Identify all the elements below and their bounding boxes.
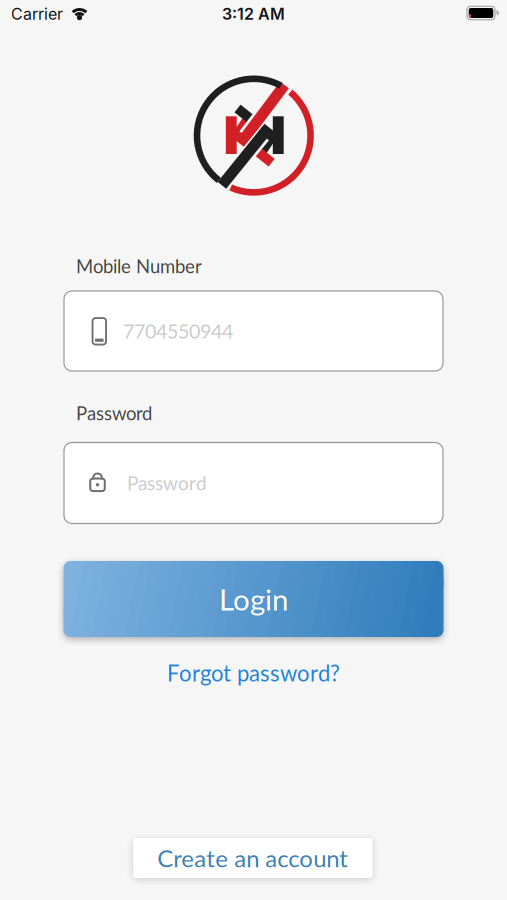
staticText: 3:12 AM <box>222 4 285 24</box>
button[interactable]: Login <box>63 561 443 637</box>
button[interactable] <box>64 291 443 371</box>
button[interactable] <box>64 442 443 523</box>
staticText: Password <box>127 472 207 494</box>
staticText: Mobile Number <box>76 255 202 277</box>
staticText: Login <box>219 581 288 617</box>
staticText: Carrier <box>11 4 63 24</box>
staticText: Forgot password? <box>167 660 340 686</box>
button[interactable]: Forgot password? <box>167 660 340 686</box>
staticText: Create an account <box>157 844 348 872</box>
button[interactable]: Create an account <box>133 838 373 878</box>
staticText: 7704550944 <box>123 319 233 343</box>
staticText: Password <box>76 402 152 424</box>
